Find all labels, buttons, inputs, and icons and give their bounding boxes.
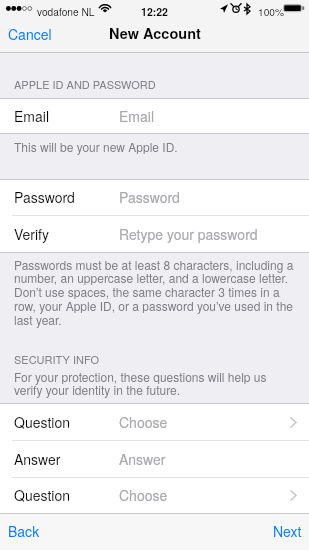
button[interactable]: Answer (0, 441, 309, 478)
button[interactable]: Next (261, 513, 309, 550)
staticText: Question (14, 412, 70, 432)
staticText: Passwords must be at least 8 characters,… (14, 256, 294, 328)
other: Choose (290, 490, 297, 501)
button[interactable]: Question (0, 478, 309, 513)
staticText: Back (8, 521, 40, 541)
staticText: vodafone NL (37, 4, 95, 19)
staticText: Choose (119, 485, 168, 505)
staticText: Email (14, 106, 49, 126)
staticText: APPLE ID AND PASSWORD (14, 76, 156, 92)
staticText: Answer (119, 449, 166, 469)
staticText: 100% (258, 4, 285, 19)
staticText: Email (119, 106, 154, 126)
staticText: Question (14, 485, 70, 505)
button[interactable]: Back (0, 513, 52, 550)
staticText: 12:22 (0, 4, 309, 19)
button[interactable]: Password (0, 180, 309, 216)
button[interactable]: Verify (0, 216, 309, 253)
staticText: SECURITY INFO (14, 351, 99, 367)
staticText: Answer (14, 449, 61, 469)
staticText: Cancel (8, 24, 52, 44)
staticText: For your protection, these questions wil… (14, 368, 267, 398)
staticText: New Account (109, 23, 201, 44)
staticText: Retype your password (119, 224, 258, 244)
button[interactable]: Email (0, 99, 309, 134)
staticText: Choose (119, 412, 168, 432)
staticText: Next (273, 521, 302, 541)
button[interactable]: Question (0, 404, 309, 441)
other: Choose (290, 417, 297, 428)
staticText: Verify (14, 224, 50, 244)
staticText: Password (119, 187, 180, 207)
button[interactable]: Cancel (0, 20, 62, 53)
staticText: This will be your new Apple ID. (14, 138, 178, 155)
staticText: Password (14, 187, 75, 207)
